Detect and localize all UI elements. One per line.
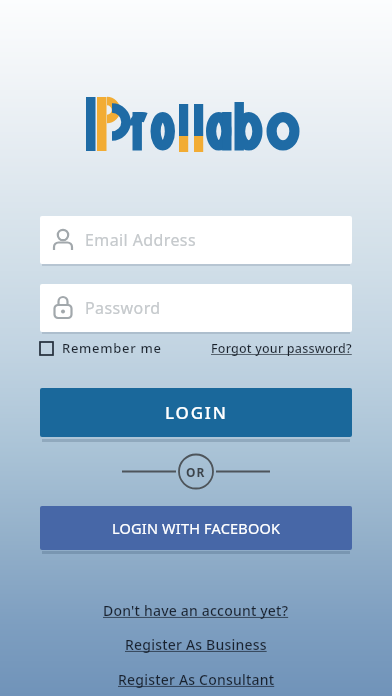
staticText: OR [186, 464, 206, 480]
button[interactable]: Password [40, 284, 352, 332]
staticText: LOGIN WITH FACEBOOK [112, 518, 281, 538]
staticText: LOGIN [165, 401, 228, 424]
button[interactable]: Don't have an account yet? [103, 601, 289, 620]
button[interactable]: Register As Business [125, 635, 267, 654]
button[interactable]: LOGIN WITH FACEBOOK [40, 506, 352, 550]
button[interactable]: Remember me [40, 339, 162, 357]
button[interactable]: OR [179, 454, 213, 489]
button[interactable]: Register As Consultant [118, 670, 275, 689]
staticText: Email Address [85, 229, 196, 251]
button[interactable]: Forgot your password? [211, 340, 352, 357]
button[interactable]: Email Address [40, 216, 352, 264]
button[interactable]: LOGIN [40, 388, 352, 437]
staticText: Password [85, 297, 161, 319]
staticText: Remember me [62, 339, 162, 357]
